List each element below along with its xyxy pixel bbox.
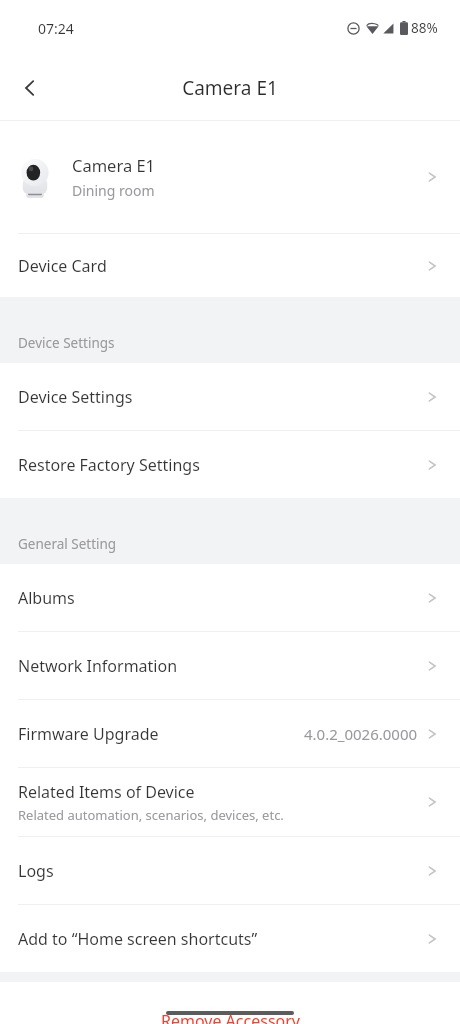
button[interactable]: Related Items of Device [0, 768, 460, 836]
staticText: Remove Accessory [161, 1010, 300, 1024]
button[interactable]: Albums [0, 564, 460, 631]
staticText: Albums [18, 587, 75, 609]
staticText: 4.0.2_0026.0000 [304, 724, 418, 744]
button[interactable]: Camera E1 [0, 121, 460, 233]
staticText: Related Items of Device [18, 781, 195, 803]
staticText: Camera E1 [72, 154, 156, 176]
staticText: Device Settings [18, 386, 133, 408]
staticText: Dining room [72, 181, 155, 200]
button[interactable]: Device Settings [0, 363, 460, 430]
staticText: Related automation, scenarios, devices, … [18, 806, 284, 824]
staticText: Device Settings [18, 334, 115, 352]
staticText: Camera E1 [182, 75, 278, 101]
button[interactable]: Add to “Home screen shortcuts” [0, 905, 460, 972]
staticText: General Setting [18, 535, 117, 553]
button[interactable]: Back [10, 68, 50, 108]
staticText: Firmware Upgrade [18, 723, 159, 745]
staticText: Network Information [18, 655, 178, 677]
staticText: Logs [18, 860, 54, 882]
button[interactable]: Network Information [0, 632, 460, 699]
button[interactable]: Remove Accessory [0, 982, 460, 1024]
staticText: 88% [411, 19, 438, 37]
staticText: Restore Factory Settings [18, 454, 200, 476]
button[interactable]: Logs [0, 837, 460, 904]
button[interactable]: Firmware Upgrade [0, 700, 460, 767]
button[interactable]: Device Card [0, 234, 460, 297]
staticText: Add to “Home screen shortcuts” [18, 928, 258, 950]
staticText: Device Card [18, 255, 107, 277]
staticText: 07:24 [38, 19, 74, 38]
button[interactable]: Restore Factory Settings [0, 431, 460, 498]
